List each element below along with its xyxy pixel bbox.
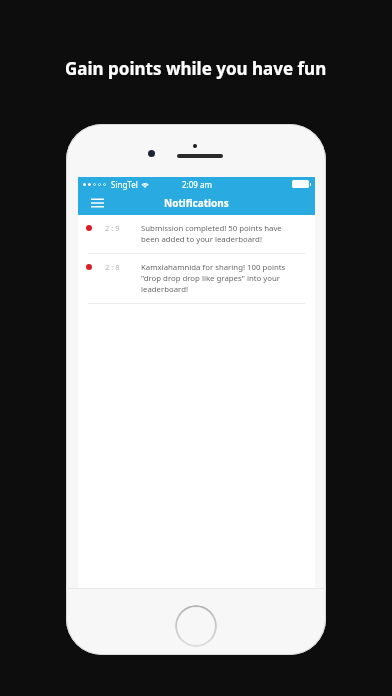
staticText: Gain points while you have fun: [65, 57, 327, 80]
staticText: "drop drop drop like grapes" into your: [141, 273, 281, 284]
staticText: 2 : 8: [105, 262, 120, 272]
staticText: 2 : 9: [105, 223, 120, 233]
button[interactable]: Home: [175, 605, 217, 647]
staticText: leaderboard!: [141, 284, 189, 295]
button[interactable]: 2 : 8: [78, 254, 315, 303]
staticText: Kamxiahamnida for sharing! 100 points: [141, 262, 286, 273]
staticText: Submission completed! 50 points have: [141, 223, 282, 234]
button[interactable]: 2 : 9: [78, 215, 315, 253]
button[interactable]: Menu: [86, 192, 108, 214]
staticText: SingTel: [111, 179, 138, 190]
staticText: been added to your leaderboard!: [141, 234, 262, 245]
staticText: 2:09 am: [182, 179, 212, 190]
staticText: Notifications: [164, 196, 229, 210]
